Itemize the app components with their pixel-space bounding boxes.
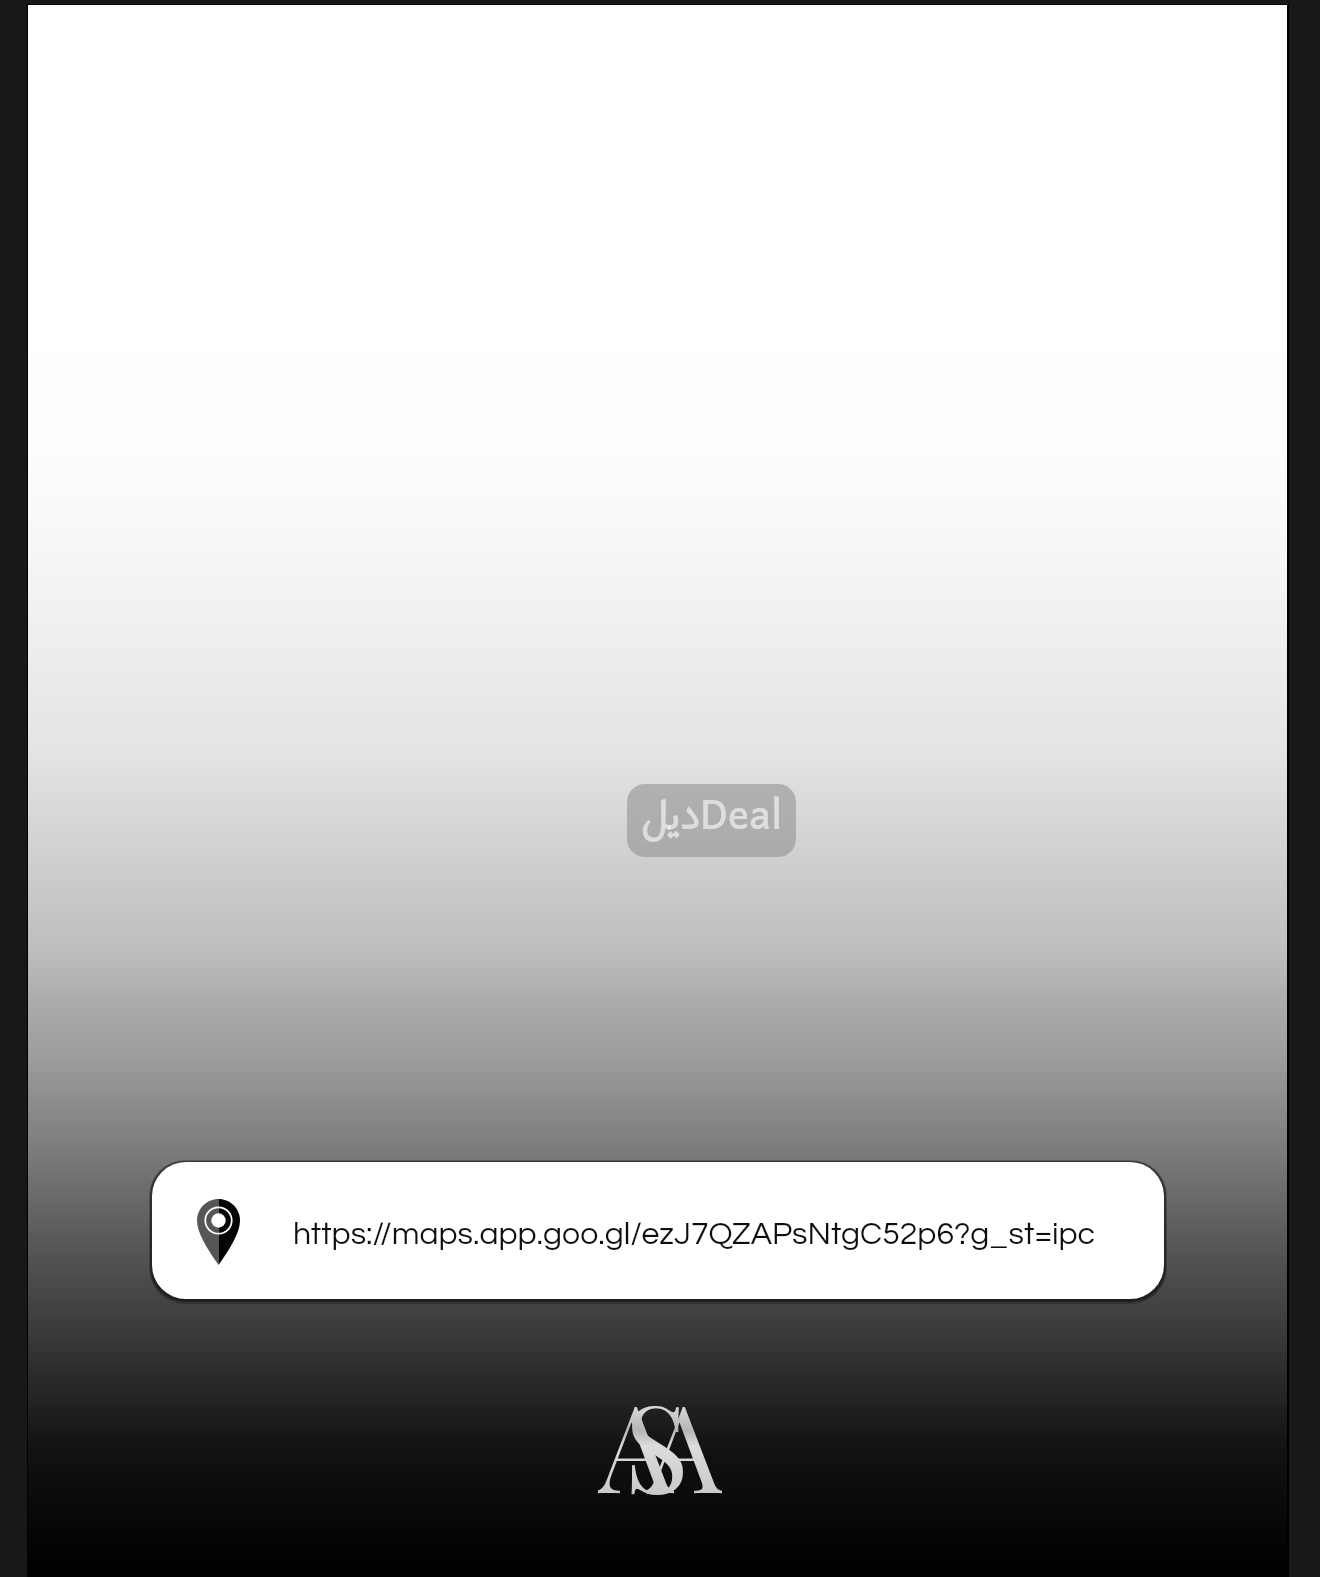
staticText: S <box>624 1363 689 1503</box>
button[interactable]: Location <box>152 1162 1164 1299</box>
staticText: https://maps.app.goo.gl/ezJ7QZAPsNtgC52p… <box>293 1218 1096 1251</box>
staticText: A <box>646 1363 722 1503</box>
staticText: A <box>598 1363 674 1503</box>
other: Location <box>197 1199 240 1265</box>
staticText: ديلDeal <box>641 784 783 843</box>
